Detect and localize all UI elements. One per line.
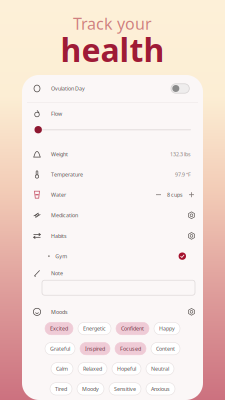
- button[interactable]: Note text field: [22, 280, 203, 295]
- button[interactable]: Excited: [45, 322, 73, 335]
- button[interactable]: Energetic: [78, 322, 111, 335]
- staticText: Note: [51, 270, 63, 277]
- button[interactable]: Weight: [22, 144, 203, 164]
- button[interactable]: Relaxed: [78, 363, 107, 375]
- staticText: Neutral: [151, 365, 169, 372]
- button[interactable]: Calm: [51, 363, 73, 375]
- staticText: Energetic: [83, 325, 106, 332]
- staticText: Anxious: [151, 385, 170, 392]
- button[interactable]: Moody: [77, 383, 104, 395]
- button[interactable]: Confident: [116, 322, 149, 335]
- staticText: Confident: [121, 325, 144, 332]
- staticText: Ovulation Day: [51, 85, 85, 92]
- staticText: Medication: [51, 212, 78, 219]
- button[interactable]: Focused: [115, 342, 146, 355]
- staticText: Flow: [51, 110, 62, 117]
- button[interactable]: Happy: [154, 322, 180, 335]
- staticText: Relaxed: [83, 365, 102, 372]
- staticText: Focused: [120, 345, 141, 352]
- button[interactable]: Neutral: [146, 363, 174, 375]
- button[interactable]: Hopeful: [112, 363, 141, 375]
- button[interactable]: Increase water: [186, 188, 197, 201]
- button[interactable]: Inspired: [80, 342, 110, 355]
- button[interactable]: Anxious: [146, 383, 175, 395]
- button[interactable]: Sensitive: [109, 383, 141, 395]
- staticText: Water: [51, 191, 66, 198]
- staticText: Moody: [82, 385, 99, 392]
- staticText: Habits: [51, 232, 67, 239]
- staticText: Moods: [51, 308, 68, 315]
- button[interactable]: Gym: [22, 246, 203, 266]
- button[interactable]: Medication settings: [185, 208, 198, 222]
- staticText: 132.3 lbs: [170, 151, 191, 158]
- button[interactable]: Grateful: [45, 342, 75, 355]
- staticText: Gym: [55, 253, 67, 260]
- button[interactable]: Content: [151, 342, 180, 355]
- staticText: Happy: [159, 325, 175, 332]
- staticText: Temperature: [51, 171, 83, 178]
- staticText: 8 cups: [167, 191, 183, 198]
- staticText: Weight: [51, 151, 68, 158]
- staticText: Calm: [56, 365, 68, 372]
- staticText: Track your: [73, 13, 152, 34]
- staticText: Hopeful: [117, 365, 136, 372]
- button[interactable]: Tired: [50, 383, 72, 395]
- staticText: Tired: [55, 385, 67, 392]
- button[interactable]: Moods settings: [185, 305, 198, 319]
- staticText: Inspired: [85, 345, 105, 352]
- staticText: Grateful: [50, 345, 70, 352]
- staticText: Excited: [50, 325, 68, 332]
- staticText: Sensitive: [114, 385, 136, 392]
- button[interactable]: Habits settings: [185, 229, 198, 243]
- button[interactable]: Ovulation Day: [22, 75, 203, 102]
- staticText: health: [60, 28, 164, 71]
- button[interactable]: Decrease water: [153, 188, 164, 201]
- staticText: Content: [156, 345, 175, 352]
- button[interactable]: Temperature: [22, 164, 203, 185]
- staticText: 97.9 °F: [175, 171, 191, 178]
